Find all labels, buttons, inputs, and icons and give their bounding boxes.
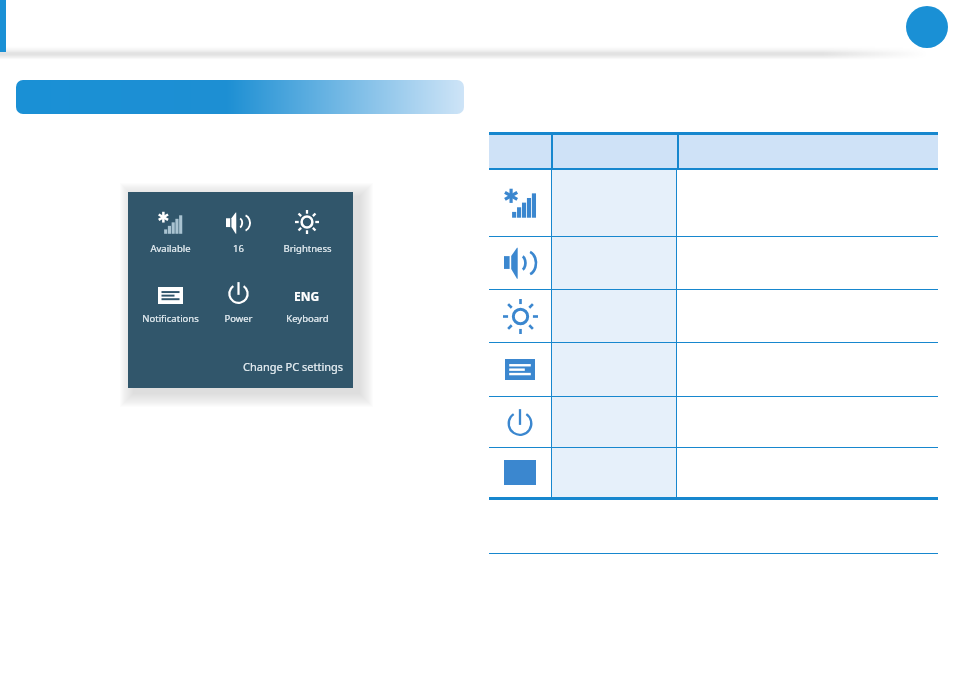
button[interactable]: Volume xyxy=(489,237,938,289)
button[interactable]: Chapter badge xyxy=(906,6,948,48)
staticText: 16 xyxy=(233,242,244,255)
staticText: Power xyxy=(224,312,253,325)
button[interactable]: Power xyxy=(489,397,938,447)
button[interactable]: 16 xyxy=(201,210,275,255)
button[interactable]: Available xyxy=(133,210,207,255)
button[interactable]: Brightness xyxy=(270,210,344,255)
staticText: ENG xyxy=(294,288,320,304)
staticText: Brightness xyxy=(283,242,332,255)
staticText: Keyboard xyxy=(286,312,329,325)
button[interactable]: Change PC settings xyxy=(243,359,344,374)
button[interactable]: Section title xyxy=(16,80,464,114)
button[interactable]: Language xyxy=(489,448,938,497)
button[interactable]: Network xyxy=(489,170,938,236)
staticText: Notifications xyxy=(142,312,199,325)
button[interactable]: Brightness xyxy=(489,290,938,342)
button[interactable]: ENG xyxy=(270,280,344,325)
button[interactable]: Notifications xyxy=(133,280,207,325)
button[interactable]: Notifications xyxy=(489,343,938,396)
staticText: Change PC settings xyxy=(243,359,344,374)
button[interactable]: Power xyxy=(201,280,275,325)
staticText: Available xyxy=(150,242,191,255)
